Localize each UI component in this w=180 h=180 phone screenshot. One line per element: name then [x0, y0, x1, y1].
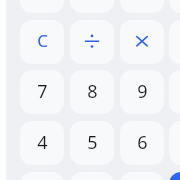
button[interactable]: key [120, 172, 164, 180]
staticText: 9 [137, 79, 148, 104]
button[interactable]: key [20, 172, 64, 180]
button[interactable]: C [20, 20, 64, 64]
button[interactable]: 7 [20, 70, 64, 114]
button[interactable]: Multiply [120, 20, 164, 64]
button[interactable]: Equals [169, 172, 180, 180]
button[interactable]: 4 [20, 121, 64, 165]
button[interactable]: 6 [120, 121, 164, 165]
button[interactable]: 5 [70, 121, 114, 165]
button[interactable]: key [169, 0, 180, 13]
button[interactable]: 8 [70, 70, 114, 114]
button[interactable]: 9 [120, 70, 164, 114]
staticText: 4 [37, 130, 48, 155]
staticText: 5 [87, 130, 98, 155]
staticText: 6 [137, 130, 148, 155]
button[interactable]: key [70, 172, 114, 180]
staticText: 8 [87, 79, 98, 104]
button[interactable]: Divide [70, 20, 114, 64]
staticText: 7 [37, 79, 48, 104]
staticText: C [37, 29, 48, 52]
